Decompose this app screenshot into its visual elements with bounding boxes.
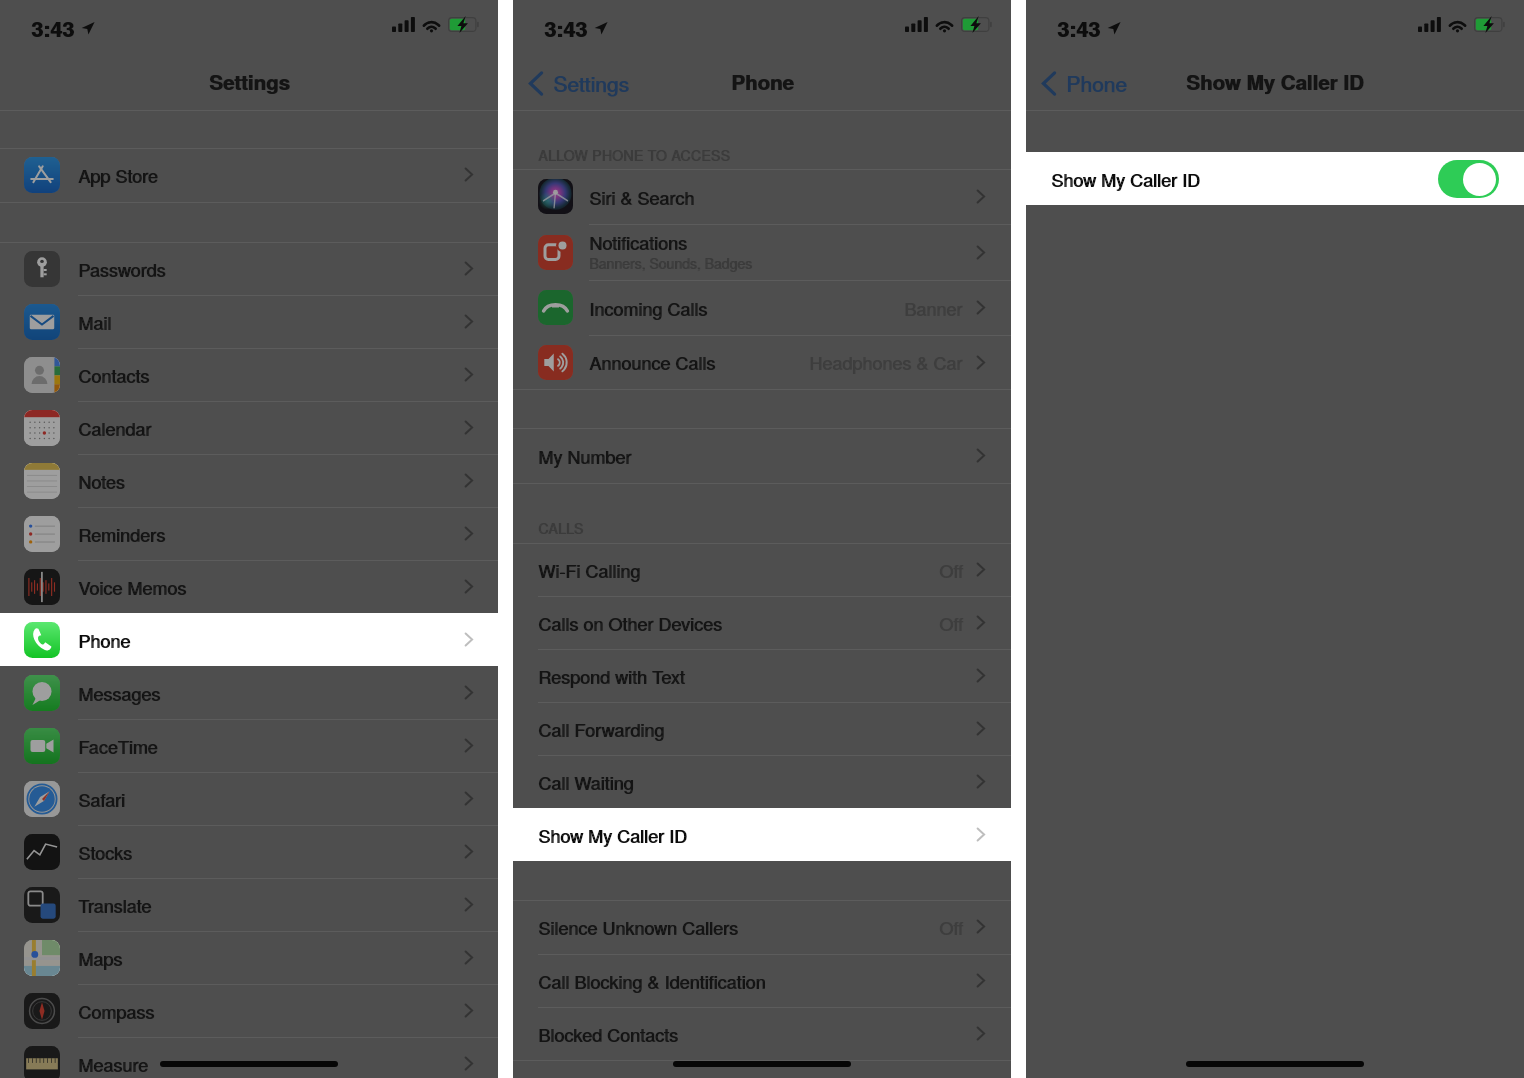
- staticText: 3:43: [545, 13, 589, 44]
- staticText: Call Forwarding: [539, 716, 665, 742]
- button[interactable]: Siri & Search: [513, 169, 1011, 224]
- staticText: Safari: [79, 786, 126, 812]
- button[interactable]: Blocked Contacts: [513, 1007, 1011, 1060]
- button[interactable]: Phone: [0, 613, 498, 666]
- button[interactable]: Translate: [0, 878, 498, 931]
- button[interactable]: Stocks: [0, 825, 498, 878]
- staticText: Show My Caller ID: [1052, 166, 1201, 192]
- staticText: Off: [939, 557, 963, 583]
- staticText: Contacts: [78, 362, 150, 388]
- button[interactable]: Call Forwarding: [513, 702, 1011, 755]
- staticText: Compass: [79, 998, 156, 1024]
- staticText: Settings: [210, 67, 291, 96]
- staticText: Settings: [209, 67, 290, 96]
- button[interactable]: Incoming Calls: [513, 280, 1011, 335]
- staticText: Stocks: [78, 839, 132, 865]
- staticText: Phone: [731, 67, 794, 96]
- staticText: Off: [939, 914, 963, 940]
- staticText: 3:43: [1057, 13, 1101, 44]
- staticText: Off: [939, 610, 963, 636]
- button[interactable]: Calendar: [0, 401, 498, 454]
- staticText: CALLS: [539, 518, 585, 538]
- button[interactable]: Notifications: [513, 224, 1011, 280]
- staticText: Voice Memos: [79, 574, 188, 600]
- staticText: Announce Calls: [589, 349, 716, 375]
- button[interactable]: Phone: [1042, 67, 1127, 99]
- staticText: ALLOW PHONE TO ACCESS: [539, 145, 731, 165]
- staticText: Call Waiting: [538, 769, 634, 795]
- button[interactable]: Show My Caller ID toggle: [1438, 160, 1499, 198]
- button[interactable]: Safari: [0, 772, 498, 825]
- staticText: Notifications: [590, 229, 688, 255]
- staticText: Call Forwarding: [538, 716, 664, 742]
- button[interactable]: Silence Unknown Callers: [513, 900, 1011, 953]
- button[interactable]: My Number: [513, 428, 1011, 483]
- staticText: Measure: [78, 1051, 148, 1077]
- button[interactable]: Notes: [0, 454, 498, 507]
- staticText: Mail: [79, 309, 112, 335]
- staticText: Incoming Calls: [590, 295, 709, 321]
- button[interactable]: Calls on Other Devices: [513, 596, 1011, 649]
- staticText: Siri & Search: [589, 184, 694, 210]
- button[interactable]: Call Waiting: [513, 755, 1011, 808]
- button[interactable]: Wi-Fi Calling: [513, 543, 1011, 596]
- button[interactable]: Show My Caller ID: [1026, 152, 1524, 205]
- button[interactable]: App Store: [0, 148, 498, 201]
- staticText: Passwords: [78, 256, 166, 282]
- button[interactable]: Messages: [0, 666, 498, 719]
- staticText: Mail: [78, 309, 111, 335]
- staticText: Silence Unknown Callers: [538, 914, 738, 940]
- staticText: Phone: [732, 67, 795, 96]
- staticText: Off: [940, 914, 964, 940]
- staticText: FaceTime: [78, 733, 158, 759]
- staticText: 3:43: [32, 13, 76, 44]
- button[interactable]: Voice Memos: [0, 560, 498, 613]
- staticText: Respond with Text: [538, 663, 685, 689]
- button[interactable]: Compass: [0, 984, 498, 1037]
- staticText: Calls on Other Devices: [539, 610, 723, 636]
- staticText: Show My Caller ID: [1187, 67, 1365, 96]
- button[interactable]: Show My Caller ID: [513, 808, 1011, 861]
- button[interactable]: Settings: [529, 67, 629, 99]
- staticText: App Store: [78, 162, 158, 188]
- button[interactable]: Announce Calls: [513, 335, 1011, 389]
- staticText: Messages: [79, 680, 162, 706]
- button[interactable]: FaceTime: [0, 719, 498, 772]
- staticText: Show My Caller ID: [538, 822, 687, 848]
- button[interactable]: Reminders: [0, 507, 498, 560]
- staticText: Compass: [78, 998, 155, 1024]
- button[interactable]: Passwords: [0, 242, 498, 295]
- staticText: Wi-Fi Calling: [538, 557, 640, 583]
- staticText: Phone: [1066, 68, 1127, 98]
- staticText: Silence Unknown Callers: [539, 914, 739, 940]
- staticText: Notes: [78, 468, 125, 494]
- staticText: Translate: [79, 892, 153, 918]
- staticText: Safari: [78, 786, 125, 812]
- staticText: Blocked Contacts: [539, 1021, 679, 1047]
- staticText: Banners, Sounds, Badges: [590, 253, 753, 273]
- staticText: Show My Caller ID: [539, 822, 688, 848]
- staticText: 3:43: [1058, 13, 1102, 44]
- staticText: Calls on Other Devices: [538, 610, 722, 636]
- button[interactable]: Contacts: [0, 348, 498, 401]
- staticText: Off: [940, 610, 964, 636]
- staticText: Siri & Search: [590, 184, 695, 210]
- staticText: My Number: [538, 443, 632, 469]
- button[interactable]: Measure: [0, 1037, 498, 1078]
- button[interactable]: Call Blocking & Identification: [513, 954, 1011, 1007]
- staticText: Call Waiting: [539, 769, 635, 795]
- staticText: Phone: [78, 627, 131, 653]
- button[interactable]: Respond with Text: [513, 649, 1011, 702]
- staticText: Off: [940, 557, 964, 583]
- staticText: Banners, Sounds, Badges: [589, 253, 752, 273]
- staticText: 3:43: [31, 13, 75, 44]
- staticText: Messages: [78, 680, 161, 706]
- staticText: App Store: [79, 162, 159, 188]
- staticText: Call Blocking & Identification: [538, 968, 766, 994]
- button[interactable]: Mail: [0, 295, 498, 348]
- staticText: Phone: [1067, 68, 1128, 98]
- staticText: Show My Caller ID: [1186, 67, 1364, 96]
- button[interactable]: Maps: [0, 931, 498, 984]
- staticText: Wi-Fi Calling: [539, 557, 641, 583]
- staticText: FaceTime: [79, 733, 159, 759]
